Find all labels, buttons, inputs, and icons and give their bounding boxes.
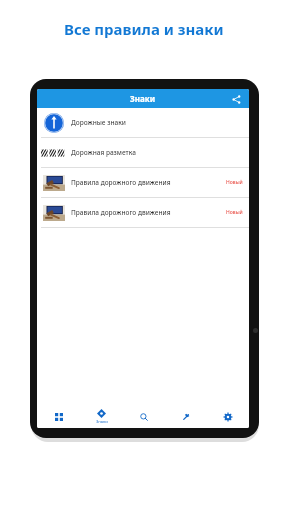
button[interactable]: Search: [123, 405, 165, 428]
button[interactable]: Tools: [165, 405, 207, 428]
staticText: Новый: [226, 209, 243, 216]
button[interactable]: Правила дорожного движения: [37, 168, 249, 197]
button[interactable]: Share: [229, 92, 243, 106]
staticText: Правила дорожного движения: [71, 208, 226, 217]
staticText: Знаки: [130, 93, 156, 104]
button[interactable]: Signs: [80, 405, 123, 428]
staticText: Новый: [226, 179, 243, 186]
staticText: Дорожная разметка: [71, 148, 245, 157]
button[interactable]: Дорожные знаки: [37, 108, 249, 137]
button[interactable]: Дорожная разметка: [37, 138, 249, 167]
button[interactable]: Grid: [37, 405, 80, 428]
staticText: Все правила и знаки: [64, 19, 224, 39]
button[interactable]: Правила дорожного движения: [37, 198, 249, 227]
staticText: Знаки: [96, 419, 108, 424]
button[interactable]: Settings: [207, 405, 249, 428]
staticText: Правила дорожного движения: [71, 178, 226, 187]
staticText: Дорожные знаки: [71, 118, 245, 127]
